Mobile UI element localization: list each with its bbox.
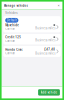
staticText: £47.48 — [44, 48, 55, 51]
button[interactable]: Close — [56, 4, 60, 8]
staticText: Business miles — [35, 52, 55, 55]
staticText: Honda Civic — [5, 48, 22, 51]
button[interactable]: Credit 125 — [3, 34, 61, 44]
staticText: Car/Van — [5, 39, 15, 43]
button[interactable]: Default — [3, 16, 61, 32]
staticText: Add vehicle — [40, 91, 57, 94]
staticText: Vehicles — [5, 11, 17, 15]
staticText: ✕ — [57, 4, 59, 7]
staticText: Credit 125 — [5, 36, 21, 39]
button[interactable]: Add vehicle — [38, 89, 60, 95]
button[interactable]: Honda Civic — [3, 46, 61, 57]
staticText: Business miles — [35, 26, 55, 30]
staticText: Manage vehicles — [4, 4, 28, 7]
staticText: Business miles — [35, 38, 55, 42]
staticText: Car/Van — [5, 51, 15, 55]
staticText: My vehicle — [5, 23, 19, 27]
staticText: Default — [7, 18, 17, 22]
staticText: Car/Van — [5, 27, 15, 30]
